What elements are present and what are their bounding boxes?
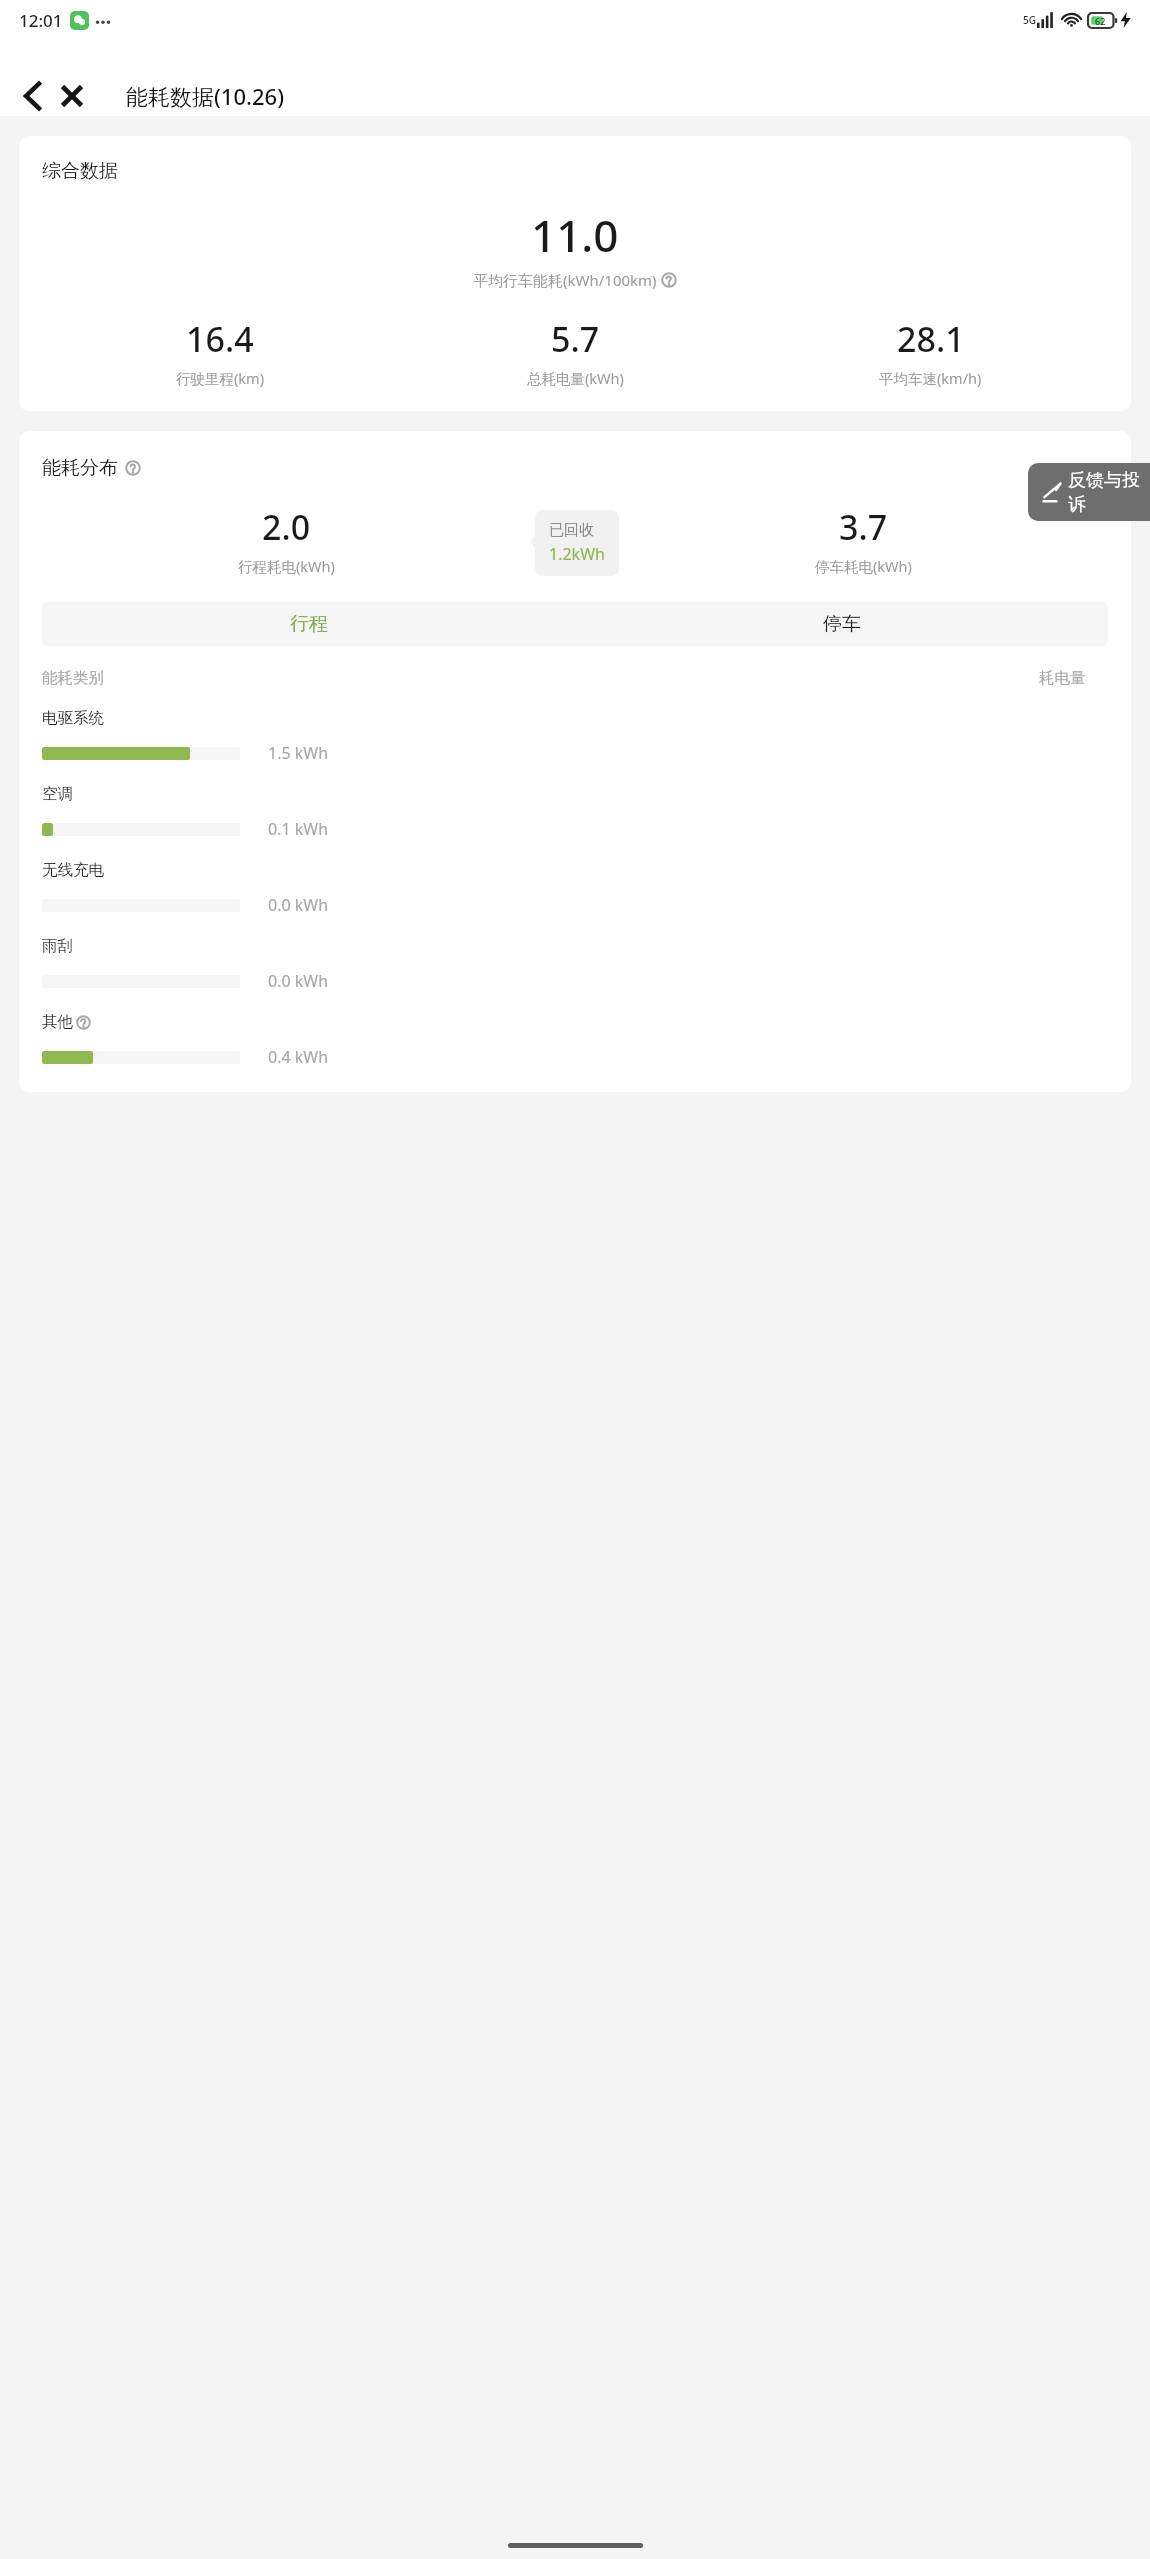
button[interactable]: Back [12, 76, 52, 116]
staticText: 总耗电量(kWh) [527, 368, 624, 388]
staticText: 5G [1023, 13, 1036, 27]
button[interactable]: Info [125, 460, 141, 476]
staticText: 行程耗电(kWh) [238, 556, 335, 576]
staticText: 已回收 [549, 521, 594, 540]
staticText: 62 [1095, 15, 1106, 27]
staticText: 0.0 kWh [268, 894, 329, 916]
staticText: 1.2kWh [549, 543, 605, 565]
staticText: 能耗类别 [42, 668, 104, 688]
staticText: 反馈与投 诉 [1068, 469, 1140, 515]
button[interactable]: 已回收 [535, 510, 619, 576]
staticText: 无线充电 [42, 860, 104, 880]
staticText: 1.5 kWh [268, 742, 329, 764]
staticText: 行程 [290, 612, 328, 636]
button[interactable]: 行程 [42, 602, 575, 646]
staticText: 平均车速(km/h) [879, 368, 982, 388]
staticText: 行驶里程(km) [176, 368, 265, 388]
staticText: 平均行车能耗(kWh/100km) [473, 270, 657, 290]
staticText: 11.0 [531, 205, 619, 265]
staticText: 雨刮 [42, 936, 73, 956]
staticText: 空调 [42, 784, 73, 804]
staticText: 耗电量 [1039, 668, 1086, 688]
staticText: 能耗数据(10.26) [126, 81, 285, 111]
staticText: 停车 [823, 612, 861, 636]
staticText: 12:01 [19, 9, 63, 32]
staticText: 16.4 [186, 316, 254, 362]
staticText: 停车耗电(kWh) [815, 556, 912, 576]
staticText: 电驱系统 [42, 708, 104, 728]
staticText: 能耗分布 [42, 456, 118, 480]
staticText: 28.1 [897, 316, 965, 362]
button[interactable]: 反馈与投 诉 [1028, 463, 1150, 521]
button[interactable]: 停车 [575, 602, 1108, 646]
button[interactable]: Close [52, 76, 92, 116]
staticText: 综合数据 [42, 159, 118, 183]
staticText: 0.0 kWh [268, 970, 329, 992]
staticText: 3.7 [839, 504, 888, 550]
staticText: 2.0 [262, 504, 311, 550]
staticText: 其他 [42, 1012, 73, 1032]
button[interactable]: Info [661, 272, 677, 288]
staticText: 0.1 kWh [268, 818, 329, 840]
staticText: 0.4 kWh [268, 1046, 329, 1068]
staticText: 5.7 [551, 316, 600, 362]
